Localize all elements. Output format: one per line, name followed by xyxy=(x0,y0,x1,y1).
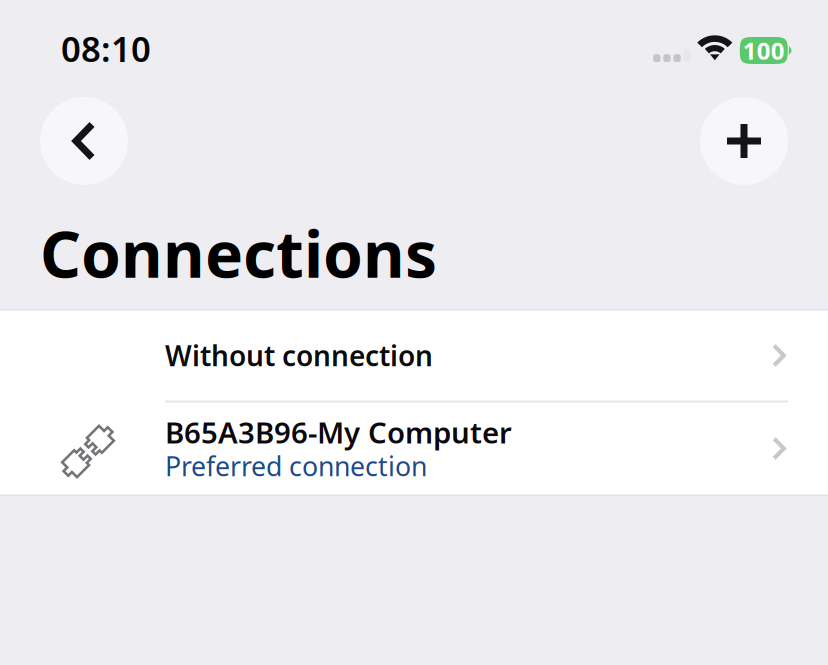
button[interactable]: Without connection xyxy=(0,310,828,400)
staticText: Preferred connection xyxy=(165,448,427,484)
button[interactable]: Back xyxy=(40,97,128,185)
button[interactable]: B65A3B96-My Computer xyxy=(0,402,828,494)
staticText: B65A3B96-My Computer xyxy=(165,412,512,451)
staticText: Without connection xyxy=(165,337,433,374)
button[interactable]: Add connection xyxy=(700,97,788,185)
staticText: Connections xyxy=(40,210,437,295)
staticText: 08:10 xyxy=(61,25,151,71)
staticText: 100 xyxy=(743,35,785,66)
